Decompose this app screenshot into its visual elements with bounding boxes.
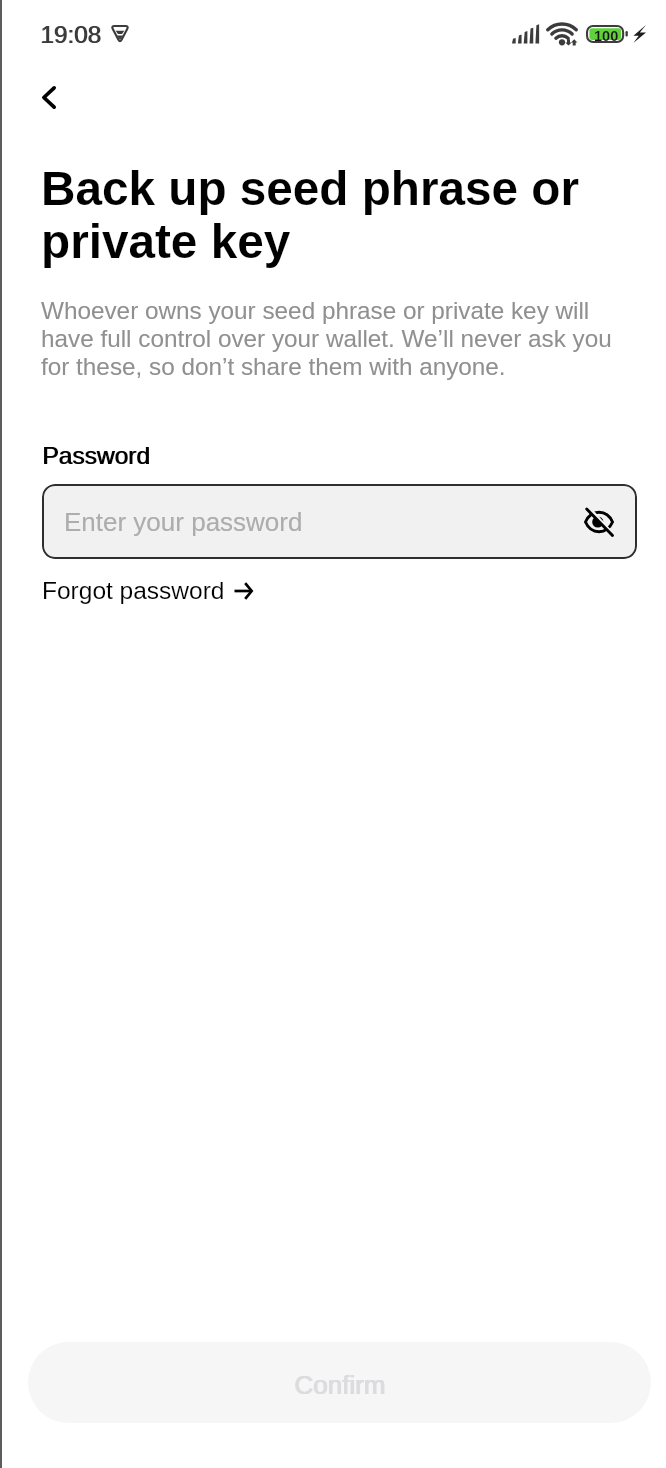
staticText: Password	[43, 442, 151, 470]
staticText: Whoever owns your seed phrase or private…	[41, 297, 621, 381]
staticText: 19:08	[40, 20, 101, 49]
staticText: 100	[594, 28, 619, 44]
staticText: 19:08	[41, 20, 102, 49]
staticText: Confirm	[295, 1370, 387, 1399]
staticText: Back up seed phrase or private key	[41, 163, 611, 269]
button[interactable]: Enter your password	[42, 484, 637, 559]
staticText: Forgot password	[42, 577, 225, 604]
button[interactable]: Confirm	[28, 1342, 651, 1423]
staticText: Confirm	[294, 1370, 386, 1399]
button[interactable]: Back	[25, 73, 73, 121]
button[interactable]: Show password	[576, 499, 622, 545]
staticText: Password	[42, 442, 150, 470]
button[interactable]: Forgot password	[30, 568, 265, 613]
staticText: Enter your password	[64, 507, 303, 536]
